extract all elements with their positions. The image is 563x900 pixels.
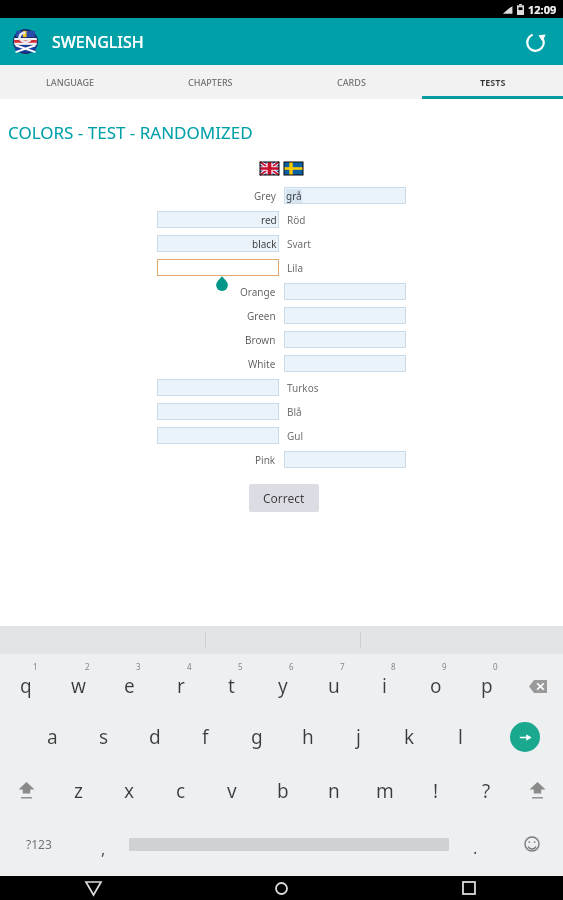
button[interactable]: Back <box>0 876 187 900</box>
button[interactable]: Shift <box>512 764 563 818</box>
staticText: CARDS <box>337 76 366 88</box>
button[interactable]: v <box>206 764 257 818</box>
button[interactable]: Enter <box>486 710 563 764</box>
button[interactable]: x <box>104 764 155 818</box>
staticText: Orange <box>240 285 276 299</box>
button[interactable]: CARDS <box>281 65 422 99</box>
staticText: COLORS - TEST - RANDOMIZED <box>8 121 253 144</box>
staticText: q <box>20 673 32 699</box>
button[interactable]: k <box>384 710 435 764</box>
button[interactable]: , <box>77 818 129 870</box>
staticText: Green <box>247 309 276 323</box>
button[interactable]: l <box>435 710 486 764</box>
button[interactable]: . <box>449 818 501 870</box>
staticText: TESTS <box>480 76 506 88</box>
staticText: ? <box>482 778 491 804</box>
button[interactable]: Refresh <box>517 24 553 60</box>
button[interactable]: 8 <box>359 656 410 710</box>
staticText: c <box>176 778 186 804</box>
staticText: n <box>328 778 340 804</box>
staticText: i <box>382 673 387 699</box>
button[interactable]: 2 <box>52 656 104 710</box>
staticText: t <box>228 673 235 699</box>
button[interactable]: f <box>180 710 231 764</box>
button[interactable]: c <box>155 764 206 818</box>
staticText: h <box>302 724 314 750</box>
staticText: j <box>356 724 361 750</box>
staticText: Pink <box>255 453 276 467</box>
staticText: , <box>101 838 106 860</box>
staticText: d <box>149 724 161 750</box>
staticText: 1 <box>33 661 38 672</box>
button[interactable]: 0 <box>461 656 512 710</box>
staticText: u <box>328 673 340 699</box>
button[interactable]: g <box>231 710 282 764</box>
staticText: m <box>376 778 394 804</box>
staticText: w <box>71 673 86 699</box>
button[interactable]: 6 <box>257 656 308 710</box>
button[interactable]: 9 <box>410 656 461 710</box>
button[interactable]: red <box>157 211 279 228</box>
staticText: 2 <box>85 661 90 672</box>
button[interactable]: black <box>157 235 279 252</box>
button[interactable]: grå <box>284 187 406 204</box>
button[interactable]: 7 <box>308 656 359 710</box>
staticText: a <box>47 724 58 750</box>
staticText: Turkos <box>287 381 319 395</box>
button[interactable] <box>157 403 279 420</box>
button[interactable]: 5 <box>206 656 257 710</box>
button[interactable] <box>157 427 279 444</box>
staticText: e <box>124 673 135 699</box>
button[interactable]: Space <box>129 818 449 870</box>
staticText: ! <box>433 778 439 804</box>
button[interactable]: 3 <box>104 656 155 710</box>
button[interactable]: 1 <box>0 656 52 710</box>
staticText: . <box>473 837 478 859</box>
staticText: l <box>458 724 463 750</box>
staticText: p <box>481 673 493 699</box>
button[interactable]: ! <box>410 764 461 818</box>
button[interactable]: TESTS <box>422 65 563 99</box>
staticText: y <box>278 673 288 699</box>
button[interactable]: m <box>359 764 410 818</box>
button[interactable]: Recents <box>375 876 563 900</box>
button[interactable]: LANGUAGE <box>0 65 140 99</box>
button[interactable]: ?123 <box>0 818 77 870</box>
button[interactable]: n <box>308 764 359 818</box>
staticText: 5 <box>238 661 243 672</box>
button[interactable]: a <box>27 710 78 764</box>
staticText: grå <box>286 189 302 203</box>
button[interactable] <box>157 259 279 276</box>
button[interactable] <box>284 283 406 300</box>
button[interactable]: CHAPTERS <box>140 65 281 99</box>
staticText: z <box>74 778 83 804</box>
button[interactable]: b <box>257 764 308 818</box>
button[interactable]: d <box>129 710 180 764</box>
button[interactable] <box>284 355 406 372</box>
button[interactable]: s <box>78 710 129 764</box>
button[interactable] <box>284 451 406 468</box>
button[interactable]: Backspace <box>512 656 563 710</box>
button[interactable]: Shift <box>0 764 52 818</box>
button[interactable]: h <box>282 710 333 764</box>
button[interactable]: Correct <box>249 484 319 512</box>
button[interactable] <box>157 379 279 396</box>
button[interactable]: z <box>52 764 104 818</box>
staticText: 7 <box>340 661 345 672</box>
staticText: 12:09 <box>528 2 557 17</box>
staticText: Blå <box>287 405 302 419</box>
button[interactable]: 4 <box>155 656 206 710</box>
staticText: Grey <box>254 189 276 203</box>
button[interactable]: ? <box>461 764 512 818</box>
button[interactable] <box>284 331 406 348</box>
staticText: red <box>261 213 277 227</box>
button[interactable] <box>284 307 406 324</box>
staticText: g <box>251 724 263 750</box>
staticText: Gul <box>287 429 304 443</box>
button[interactable]: j <box>333 710 384 764</box>
staticText: black <box>252 237 277 251</box>
button[interactable]: Emoji <box>501 818 563 870</box>
button[interactable]: Home <box>187 876 375 900</box>
staticText: 8 <box>391 661 396 672</box>
staticText: SWENGLISH <box>52 31 144 53</box>
